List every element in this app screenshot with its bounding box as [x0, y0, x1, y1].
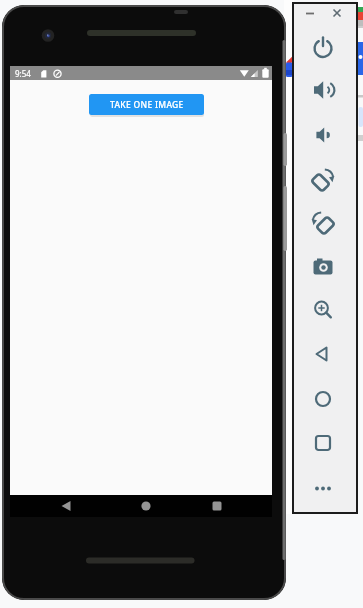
- button[interactable]: [306, 250, 340, 284]
- button[interactable]: [306, 162, 340, 196]
- button[interactable]: [302, 6, 318, 21]
- button[interactable]: [128, 495, 164, 517]
- button[interactable]: [199, 495, 235, 517]
- button[interactable]: [306, 293, 340, 327]
- button[interactable]: [306, 337, 340, 371]
- button[interactable]: [306, 73, 340, 107]
- button[interactable]: [306, 205, 340, 239]
- button[interactable]: [306, 31, 340, 65]
- staticText: TAKE ONE IMAGE: [110, 99, 184, 111]
- button[interactable]: [306, 382, 340, 416]
- button[interactable]: [48, 495, 84, 517]
- button[interactable]: [306, 426, 340, 460]
- staticText: 9:54: [15, 68, 31, 79]
- button[interactable]: [329, 6, 345, 21]
- button[interactable]: TAKE ONE IMAGE: [89, 94, 204, 115]
- button[interactable]: [306, 118, 340, 152]
- button[interactable]: [306, 471, 340, 505]
